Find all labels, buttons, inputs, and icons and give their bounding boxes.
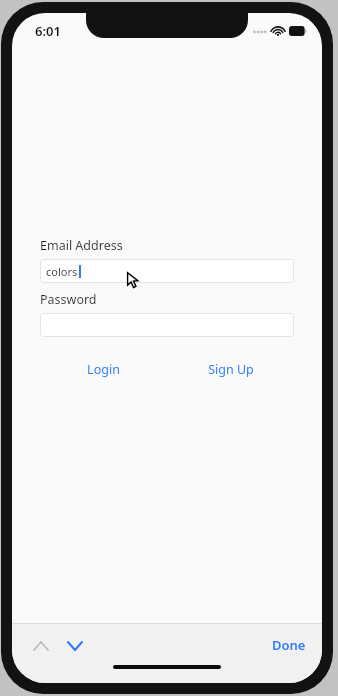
button[interactable]: Previous field (26, 631, 56, 659)
staticText: Email Address (40, 237, 123, 254)
button[interactable]: Sign Up (167, 361, 294, 378)
button[interactable]: Login (40, 361, 167, 378)
button[interactable] (40, 313, 294, 337)
staticText: Sign Up (208, 361, 254, 378)
staticText: colors (46, 264, 78, 279)
button[interactable]: colors (40, 259, 294, 283)
staticText: Password (40, 291, 97, 308)
button[interactable]: Done (266, 632, 312, 658)
staticText: Done (272, 636, 306, 654)
button[interactable]: Next field (60, 631, 90, 659)
staticText: Login (87, 361, 120, 378)
staticText: 6:01 (35, 22, 61, 40)
